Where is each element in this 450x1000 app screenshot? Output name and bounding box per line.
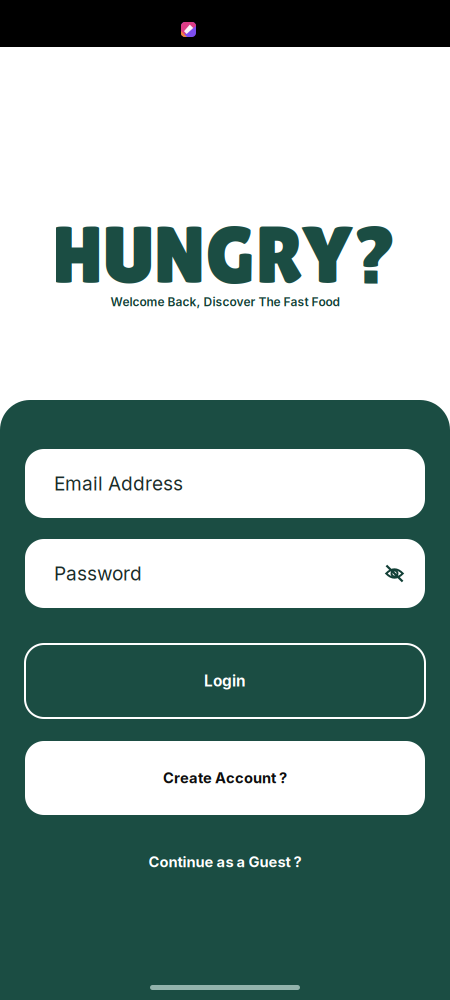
staticText: HUNGRY? [51,209,398,300]
staticText: Password [54,562,142,585]
button[interactable]: Login [25,644,425,718]
button[interactable]: Continue as a Guest ? [136,846,313,878]
staticText: Continue as a Guest ? [148,853,301,871]
staticText: Welcome Back, Discover The Fast Food [110,295,339,309]
button[interactable]: Create Account ? [25,741,425,815]
staticText: Create Account ? [163,769,287,787]
staticText: Login [204,672,246,690]
staticText: Email Address [54,472,183,495]
